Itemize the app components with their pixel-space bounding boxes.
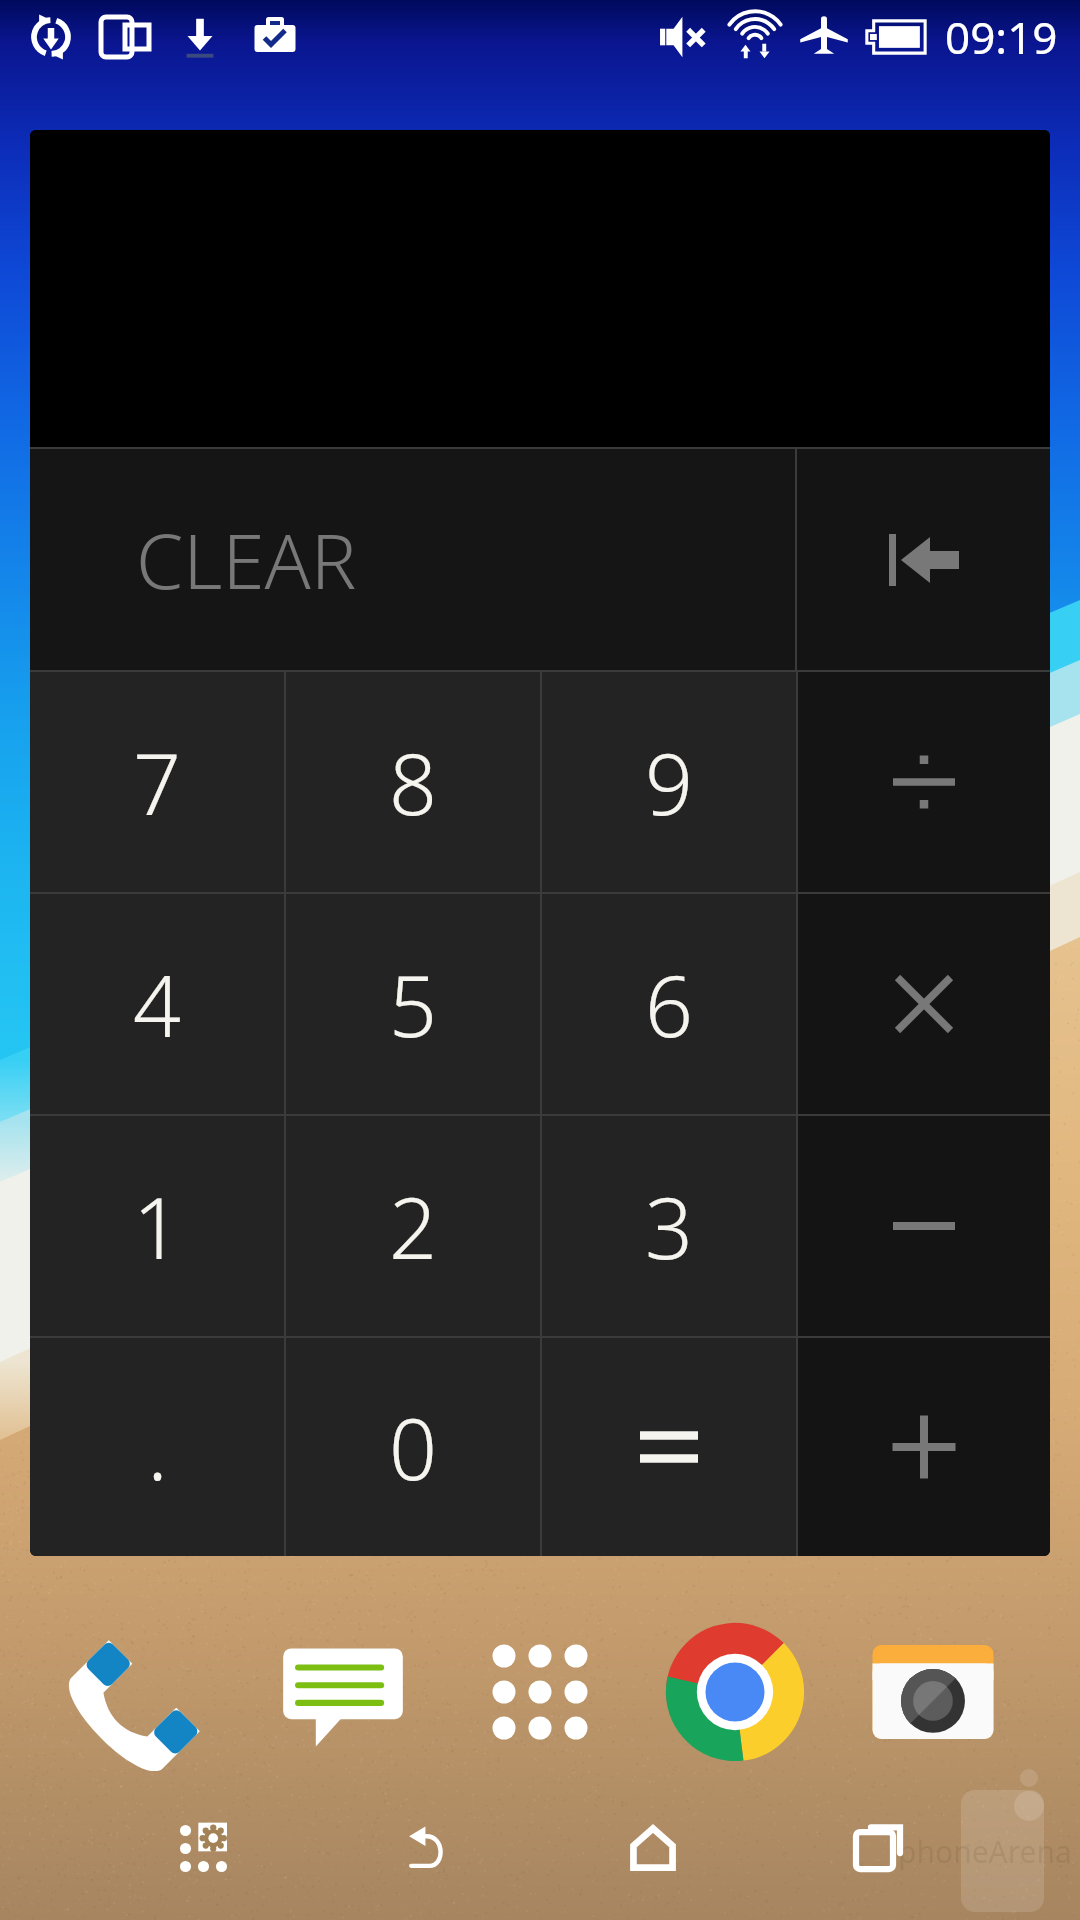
button[interactable]: 5 (286, 894, 540, 1114)
button[interactable]: Camera (853, 1612, 1013, 1772)
button[interactable]: Menu (143, 1788, 263, 1908)
staticText: 0 (389, 1390, 437, 1504)
button[interactable]: Messages (263, 1612, 423, 1772)
staticText: 6 (645, 947, 693, 1061)
staticText: 8 (389, 725, 437, 839)
button[interactable]: 2 (286, 1116, 540, 1336)
button[interactable]: 8 (286, 672, 540, 892)
staticText: 5 (389, 947, 437, 1061)
button[interactable]: Recents (818, 1788, 938, 1908)
button[interactable]: Chrome (655, 1612, 815, 1772)
staticText: CLEAR (136, 508, 357, 612)
staticText: 3 (645, 1169, 693, 1283)
button[interactable]: sub (798, 1116, 1050, 1336)
staticText: 09:19 (945, 7, 1058, 67)
button[interactable]: mul (798, 894, 1050, 1114)
button[interactable]: div (798, 672, 1050, 892)
button[interactable]: . (30, 1338, 284, 1556)
button[interactable]: 9 (542, 672, 796, 892)
staticText: 7 (133, 725, 181, 839)
button[interactable]: All apps (460, 1612, 620, 1772)
button[interactable]: CLEAR (30, 449, 795, 670)
staticText: 9 (645, 725, 693, 839)
button[interactable]: 0 (286, 1338, 540, 1556)
button[interactable]: Phone (68, 1612, 228, 1772)
button[interactable]: Backspace (797, 449, 1050, 670)
staticText: . (147, 1390, 168, 1504)
staticText: 1 (133, 1169, 181, 1283)
button[interactable]: add (798, 1338, 1050, 1556)
button[interactable]: Back (369, 1788, 489, 1908)
button[interactable]: Home (593, 1788, 713, 1908)
button[interactable] (542, 1338, 796, 1556)
button[interactable]: 7 (30, 672, 284, 892)
staticText: phoneArena (898, 1831, 1072, 1872)
button[interactable]: 3 (542, 1116, 796, 1336)
button[interactable]: 6 (542, 894, 796, 1114)
staticText: 2 (389, 1169, 437, 1283)
button[interactable]: 1 (30, 1116, 284, 1336)
button[interactable]: 4 (30, 894, 284, 1114)
staticText: 4 (133, 947, 181, 1061)
